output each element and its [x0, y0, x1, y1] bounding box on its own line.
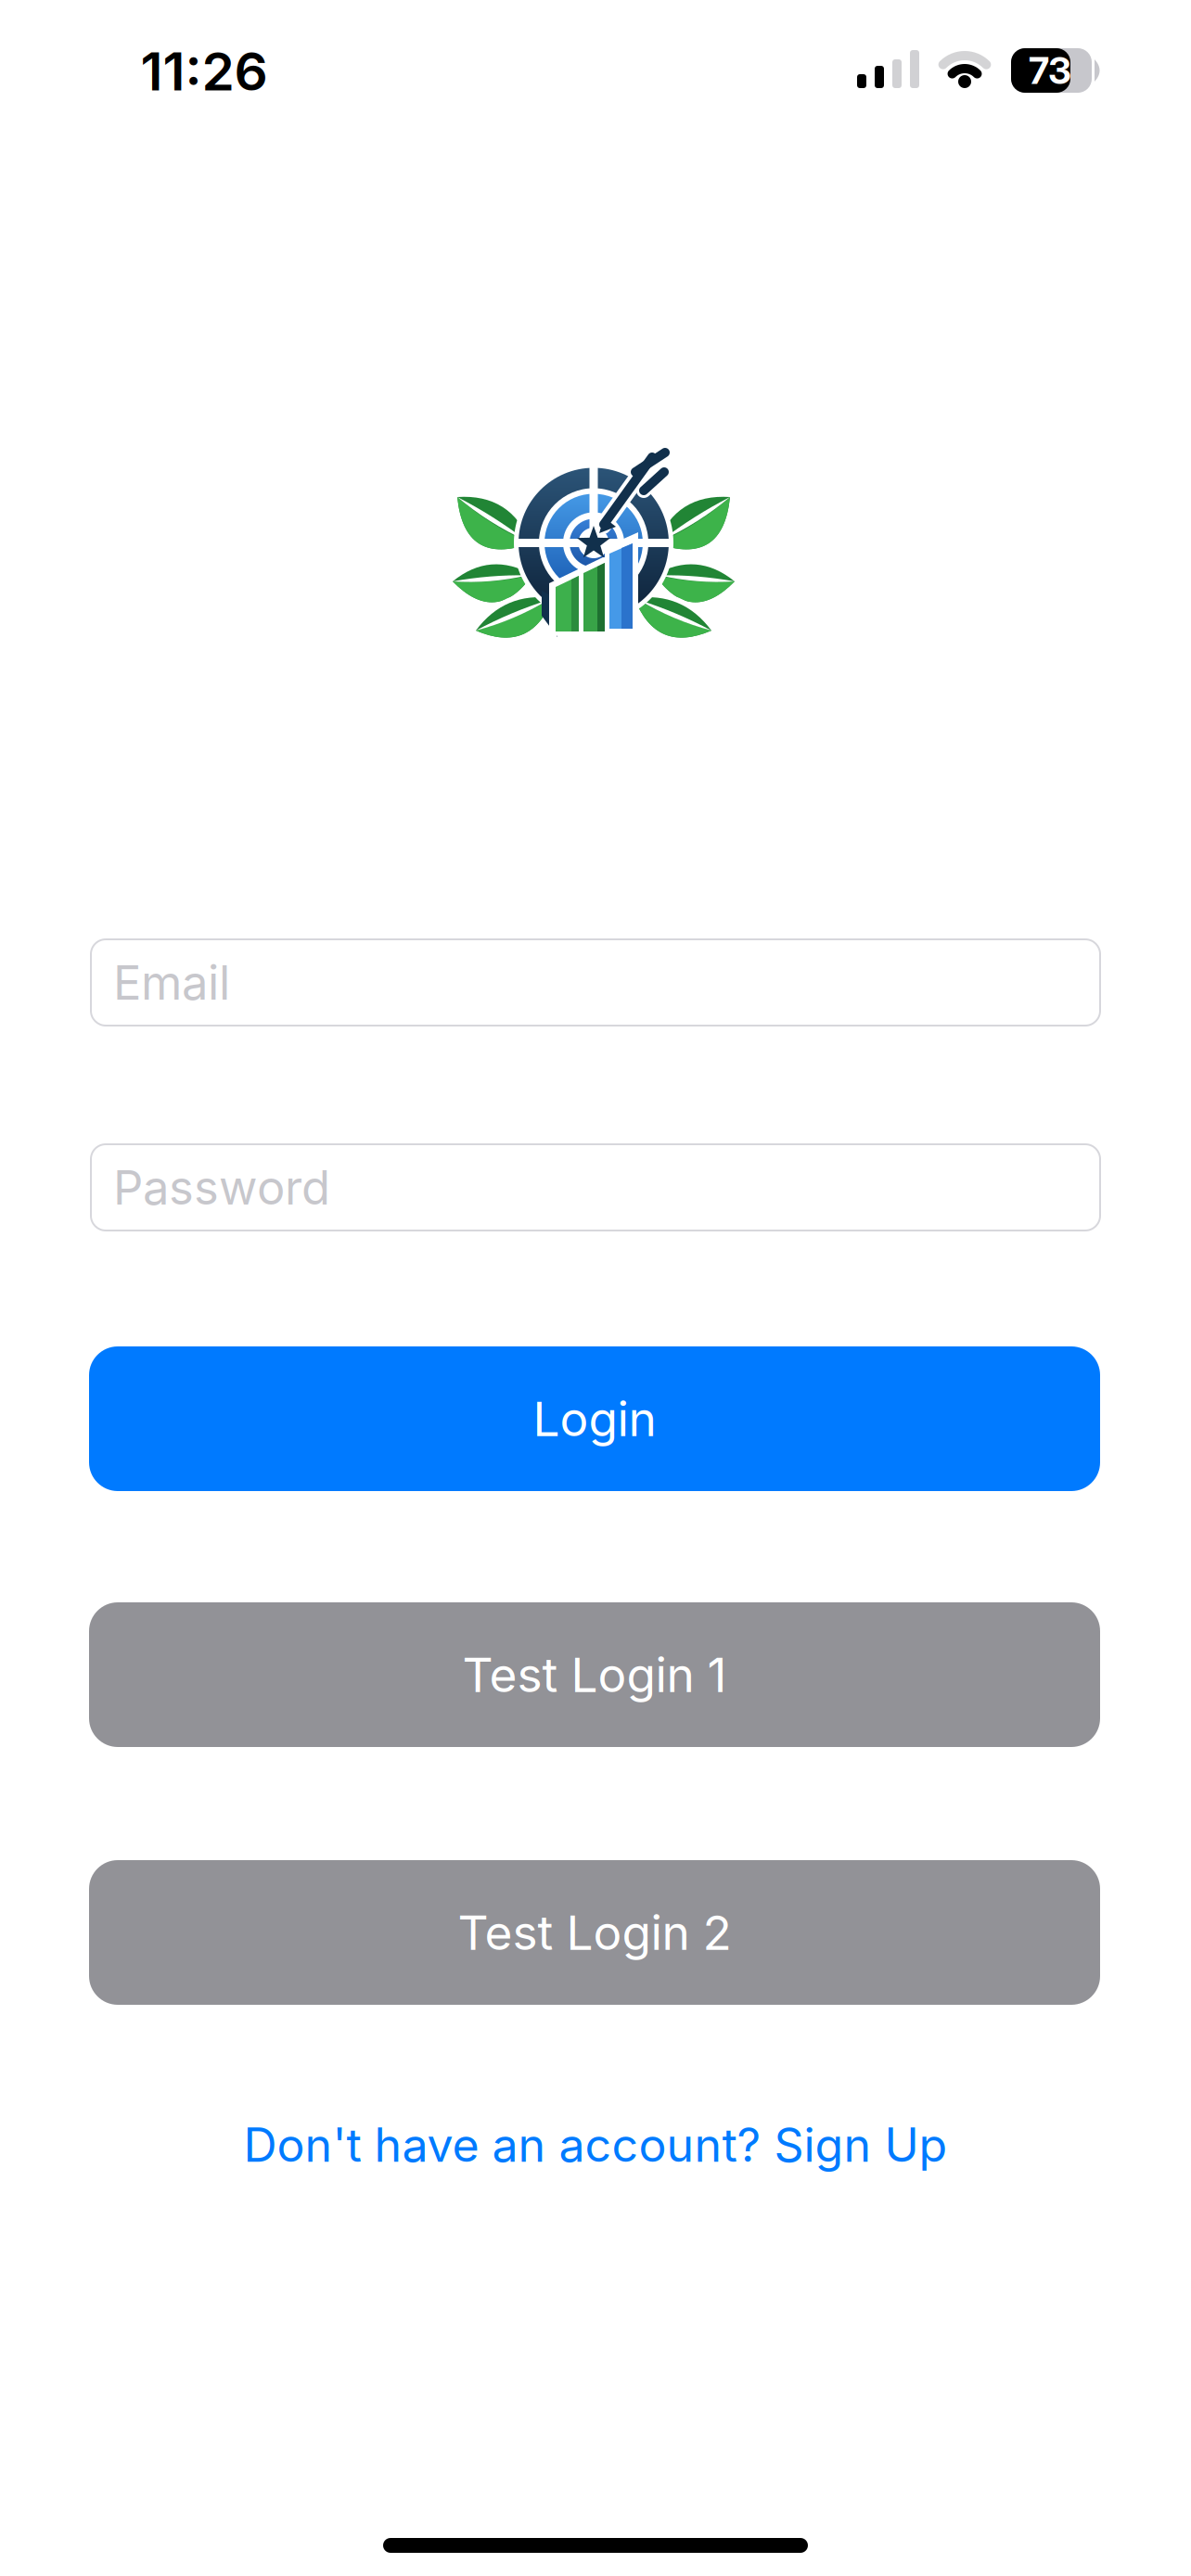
button[interactable]: Login — [89, 1346, 1100, 1491]
staticText: Test Login 2 — [458, 1904, 731, 1961]
button[interactable]: Test Login 2 — [89, 1860, 1100, 2005]
staticText: Test Login 1 — [462, 1646, 727, 1703]
staticText: 73 — [1029, 48, 1071, 93]
button[interactable]: Don't have an account? Sign Up — [243, 2117, 948, 2173]
staticText: Email — [113, 954, 230, 1011]
staticText: Don't have an account? Sign Up — [243, 2117, 948, 2173]
staticText: Login — [533, 1390, 656, 1447]
button[interactable]: Test Login 1 — [89, 1602, 1100, 1747]
staticText: 11:26 — [141, 40, 268, 103]
staticText: Password — [113, 1159, 330, 1216]
